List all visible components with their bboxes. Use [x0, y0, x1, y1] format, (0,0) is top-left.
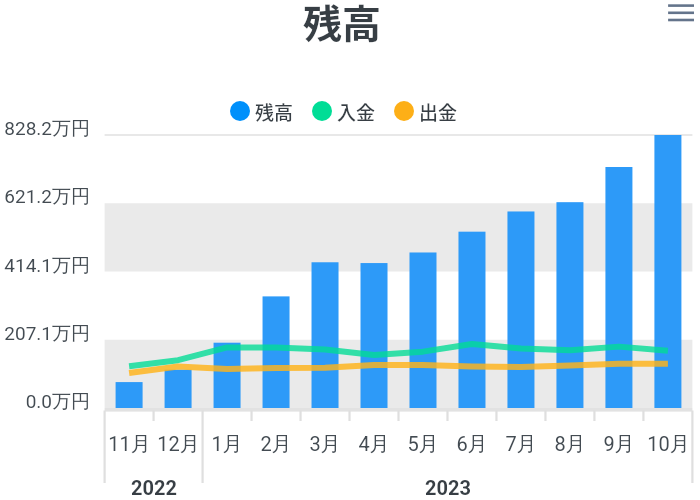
staticText: 2022 — [131, 476, 177, 499]
button[interactable]: 出金 — [394, 96, 458, 126]
staticText: 残高 — [255, 98, 294, 126]
button[interactable]: Menu — [662, 0, 700, 30]
staticText: 2月 — [260, 432, 292, 457]
staticText: 621.2万円 — [4, 185, 90, 209]
staticText: 207.1万円 — [4, 322, 90, 346]
staticText: 414.1万円 — [4, 254, 90, 278]
staticText: 6月 — [456, 432, 488, 457]
staticText: 出金 — [419, 98, 458, 126]
button[interactable]: 入金 — [312, 96, 376, 126]
staticText: 3月 — [309, 432, 341, 457]
staticText: 5月 — [407, 432, 439, 457]
staticText: 9月 — [603, 432, 635, 457]
staticText: 7月 — [505, 432, 537, 457]
staticText: 入金 — [337, 98, 376, 126]
staticText: 残高 — [303, 0, 382, 49]
staticText: 2023 — [425, 476, 471, 499]
staticText: 10月 — [647, 432, 690, 457]
button[interactable]: 残高 — [230, 96, 294, 126]
staticText: 828.2万円 — [4, 117, 90, 141]
staticText: 4月 — [358, 432, 390, 457]
staticText: 8月 — [554, 432, 586, 457]
staticText: 1月 — [211, 432, 243, 457]
staticText: 12月 — [157, 432, 200, 457]
staticText: 11月 — [108, 432, 151, 457]
staticText: 0.0万円 — [25, 390, 90, 414]
